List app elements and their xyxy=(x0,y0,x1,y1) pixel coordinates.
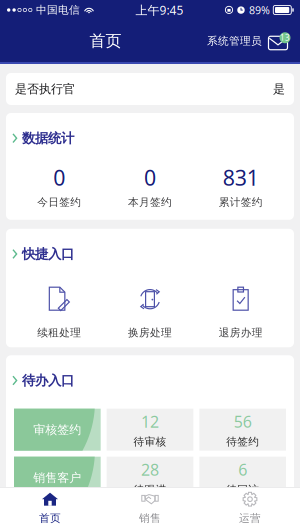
staticText: 首页 xyxy=(89,31,121,51)
staticText: 运营 xyxy=(239,512,261,525)
button[interactable]: 6 xyxy=(199,457,286,499)
button[interactable]: 系统管理员 xyxy=(201,28,268,53)
button[interactable]: 审核签约 xyxy=(14,409,101,451)
button[interactable]: 56 xyxy=(199,409,286,451)
staticText: 换房处理 xyxy=(128,326,172,339)
staticText: 6 xyxy=(238,459,247,480)
button[interactable]: 销售 xyxy=(100,485,200,530)
staticText: 0 xyxy=(53,163,65,192)
staticText: 累计签约 xyxy=(219,196,263,209)
button[interactable]: 消息 xyxy=(268,30,291,52)
button[interactable]: 退房办理 xyxy=(195,286,286,339)
staticText: 待签约 xyxy=(226,435,259,448)
staticText: 待审核 xyxy=(133,435,166,448)
staticText: 13 xyxy=(280,32,290,43)
staticText: 28 xyxy=(141,459,159,480)
staticText: 销售客户 xyxy=(33,470,81,485)
staticText: 0 xyxy=(144,163,156,192)
button[interactable]: 续租处理 xyxy=(14,286,105,339)
button[interactable]: 换房处理 xyxy=(105,286,195,339)
button[interactable]: 12 xyxy=(107,409,193,451)
staticText: 56 xyxy=(234,411,252,432)
button[interactable]: 首页 xyxy=(0,485,100,530)
staticText: 本月签约 xyxy=(128,196,172,209)
staticText: 待办入口 xyxy=(22,372,74,389)
staticText: 退房办理 xyxy=(219,326,263,339)
staticText: 销售 xyxy=(139,512,161,525)
staticText: 待跟进 xyxy=(133,483,166,496)
staticText: 数据统计 xyxy=(22,130,74,146)
staticText: 是 xyxy=(273,82,285,96)
staticText: 831 xyxy=(223,163,259,192)
button[interactable]: 运营 xyxy=(200,485,300,530)
staticText: 系统管理员 xyxy=(207,34,262,47)
staticText: 12 xyxy=(141,411,159,432)
staticText: 续租处理 xyxy=(37,326,81,339)
staticText: 待回访 xyxy=(226,483,259,496)
staticText: 89% xyxy=(249,3,270,17)
staticText: 中国电信 xyxy=(36,3,80,16)
staticText: 首页 xyxy=(39,512,61,525)
staticText: 今日签约 xyxy=(37,196,81,209)
staticText: 快捷入口 xyxy=(22,246,74,262)
staticText: 上午9:45 xyxy=(135,2,183,18)
staticText: 是否执行官 xyxy=(15,82,75,96)
staticText: 审核签约 xyxy=(33,422,81,437)
button[interactable]: 销售客户 xyxy=(14,457,101,499)
button[interactable]: 28 xyxy=(107,457,193,499)
